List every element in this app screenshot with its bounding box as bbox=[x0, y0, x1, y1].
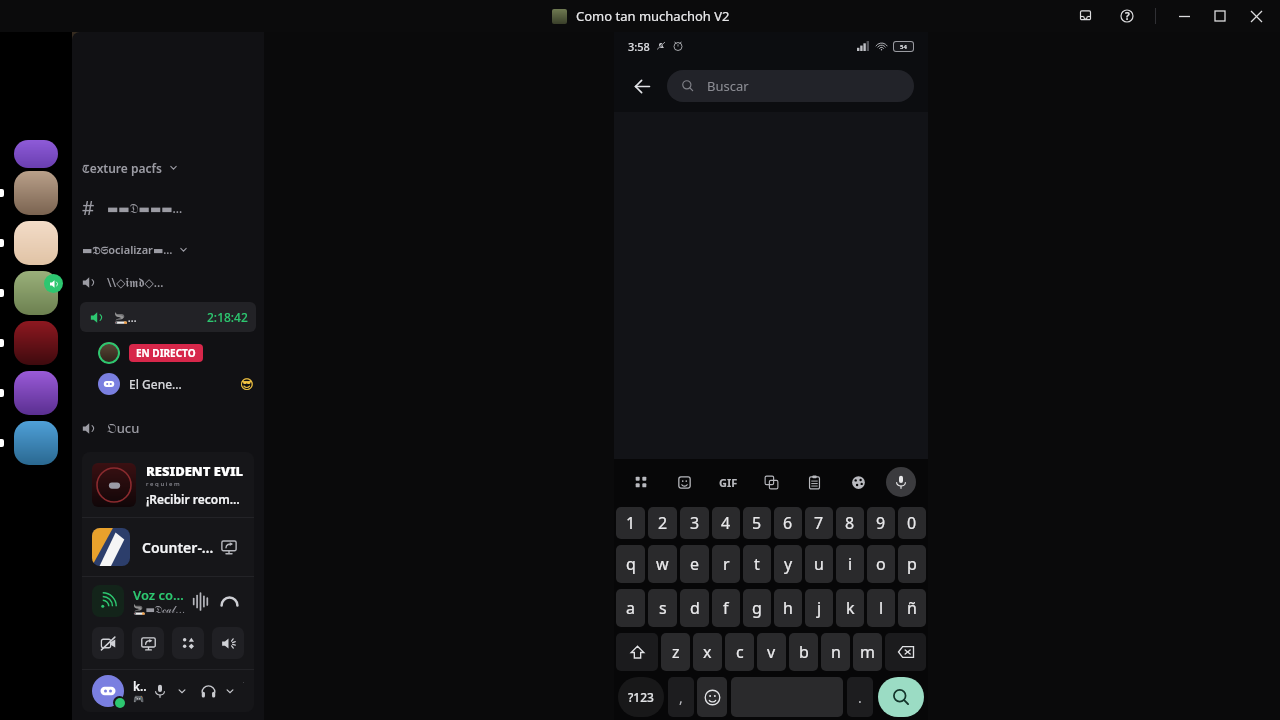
button[interactable]: Video bbox=[92, 627, 124, 659]
button[interactable]: Voice input bbox=[886, 467, 916, 497]
button[interactable]: b bbox=[789, 633, 818, 671]
staticText: . bbox=[858, 688, 862, 707]
button[interactable]: Server 6 bbox=[14, 371, 58, 415]
button[interactable]: ▬𝔇𝔖ocializar▬… bbox=[82, 238, 264, 260]
button[interactable]: \\◇𝖎𝖒𝖉◇… bbox=[80, 266, 256, 298]
button[interactable]: a bbox=[616, 589, 645, 627]
button[interactable]: 4 bbox=[712, 507, 740, 539]
button[interactable]: Server 1 bbox=[14, 140, 58, 168]
button[interactable]: u bbox=[805, 545, 833, 583]
button[interactable]: Themes bbox=[843, 467, 873, 497]
button[interactable]: n bbox=[821, 633, 850, 671]
button[interactable]: 7 bbox=[805, 507, 833, 539]
button[interactable]: RESIDENT EVIL bbox=[92, 462, 244, 507]
button[interactable]: r bbox=[712, 545, 740, 583]
button[interactable]: 8 bbox=[836, 507, 864, 539]
button[interactable]: Activities bbox=[172, 627, 204, 659]
button[interactable]: Emoji bbox=[697, 677, 727, 717]
button[interactable]: Server 7 bbox=[14, 421, 58, 465]
button[interactable]: max bbox=[1202, 0, 1238, 32]
button[interactable]: 3 bbox=[680, 507, 709, 539]
button[interactable]: Search bbox=[878, 677, 924, 717]
button[interactable]: EN DIRECTO bbox=[98, 338, 256, 368]
staticText: ? bbox=[1125, 9, 1130, 23]
button[interactable]: l bbox=[867, 589, 895, 627]
button[interactable]: c bbox=[725, 633, 754, 671]
button[interactable]: Server 4 bbox=[14, 271, 58, 315]
button[interactable]: o bbox=[867, 545, 895, 583]
button[interactable]: Deafen bbox=[195, 678, 221, 704]
button[interactable]: Server 2 bbox=[14, 171, 58, 215]
button[interactable]: 0 bbox=[898, 507, 926, 539]
button[interactable]: 5 bbox=[743, 507, 771, 539]
button[interactable]: 🚬… bbox=[88, 302, 248, 332]
button[interactable]: Audio options bbox=[221, 682, 239, 700]
button[interactable]: 1 bbox=[616, 507, 645, 539]
button[interactable]: Buscar bbox=[681, 70, 900, 102]
staticText: , bbox=[679, 688, 683, 707]
button[interactable]: z bbox=[661, 633, 690, 671]
button[interactable]: 𝔗exture pacfs bbox=[82, 156, 264, 178]
staticText: k bbox=[846, 597, 855, 619]
button[interactable]: 2 bbox=[648, 507, 677, 539]
button[interactable]: min bbox=[1166, 0, 1202, 32]
button[interactable]: d bbox=[680, 589, 709, 627]
button[interactable]: h bbox=[774, 589, 802, 627]
button[interactable]: Settings bbox=[243, 677, 244, 705]
button[interactable]: k bbox=[836, 589, 864, 627]
button[interactable]: e bbox=[680, 545, 709, 583]
staticText: 0 bbox=[907, 512, 917, 534]
button[interactable]: y bbox=[774, 545, 802, 583]
button[interactable]: Share screen bbox=[214, 532, 244, 562]
button[interactable]: w bbox=[648, 545, 677, 583]
button[interactable]: Inbox bbox=[1065, 0, 1105, 32]
button[interactable]: Profile bbox=[92, 675, 124, 707]
button[interactable]: t bbox=[743, 545, 771, 583]
button[interactable]: j bbox=[805, 589, 833, 627]
button[interactable]: Sound bbox=[186, 587, 214, 615]
button[interactable]: Back bbox=[622, 66, 662, 106]
staticText: j bbox=[817, 597, 822, 619]
button[interactable]: Stickers bbox=[669, 467, 699, 497]
button[interactable]: f bbox=[712, 589, 740, 627]
button[interactable]: Shift bbox=[616, 633, 658, 671]
button[interactable]: 𝔒ucu bbox=[80, 412, 256, 444]
button[interactable]: ñ bbox=[898, 589, 926, 627]
button[interactable]: . bbox=[847, 677, 873, 717]
button[interactable]: Clipboard bbox=[799, 467, 829, 497]
button[interactable]: GIF bbox=[713, 467, 743, 497]
staticText: 7 bbox=[814, 512, 824, 534]
button[interactable]: Backspace bbox=[885, 633, 926, 671]
button[interactable]: Mute bbox=[147, 678, 173, 704]
button[interactable]: , bbox=[668, 677, 694, 717]
button[interactable]: Soundboard bbox=[212, 627, 244, 659]
staticText: ?123 bbox=[628, 689, 654, 705]
button[interactable]: close bbox=[1238, 0, 1274, 32]
button[interactable]: Mic options bbox=[173, 682, 191, 700]
button[interactable]: i bbox=[836, 545, 864, 583]
button[interactable]: ?123 bbox=[618, 677, 664, 717]
button[interactable]: Disconnect bbox=[214, 586, 244, 616]
button[interactable]: g bbox=[743, 589, 771, 627]
button[interactable]: x bbox=[693, 633, 722, 671]
button[interactable]: 9 bbox=[867, 507, 895, 539]
button[interactable]: Server 5 bbox=[14, 321, 58, 365]
button[interactable]: Share screen bbox=[132, 627, 164, 659]
button[interactable]: El Gene… bbox=[98, 368, 254, 400]
button[interactable]: Translate bbox=[756, 467, 786, 497]
button[interactable]: # bbox=[80, 192, 256, 224]
button[interactable]: Counter-Strike 2 bbox=[92, 518, 244, 576]
button[interactable]: v bbox=[757, 633, 786, 671]
button[interactable]: m bbox=[853, 633, 882, 671]
button[interactable]: p bbox=[898, 545, 926, 583]
button[interactable]: s bbox=[648, 589, 677, 627]
staticText: El Gene… bbox=[129, 376, 182, 392]
button[interactable]: 6 bbox=[774, 507, 802, 539]
button[interactable]: Apps bbox=[626, 467, 656, 497]
button[interactable]: Server 3 bbox=[14, 221, 58, 265]
button[interactable]: q bbox=[616, 545, 645, 583]
button[interactable]: Help bbox=[1105, 0, 1149, 32]
